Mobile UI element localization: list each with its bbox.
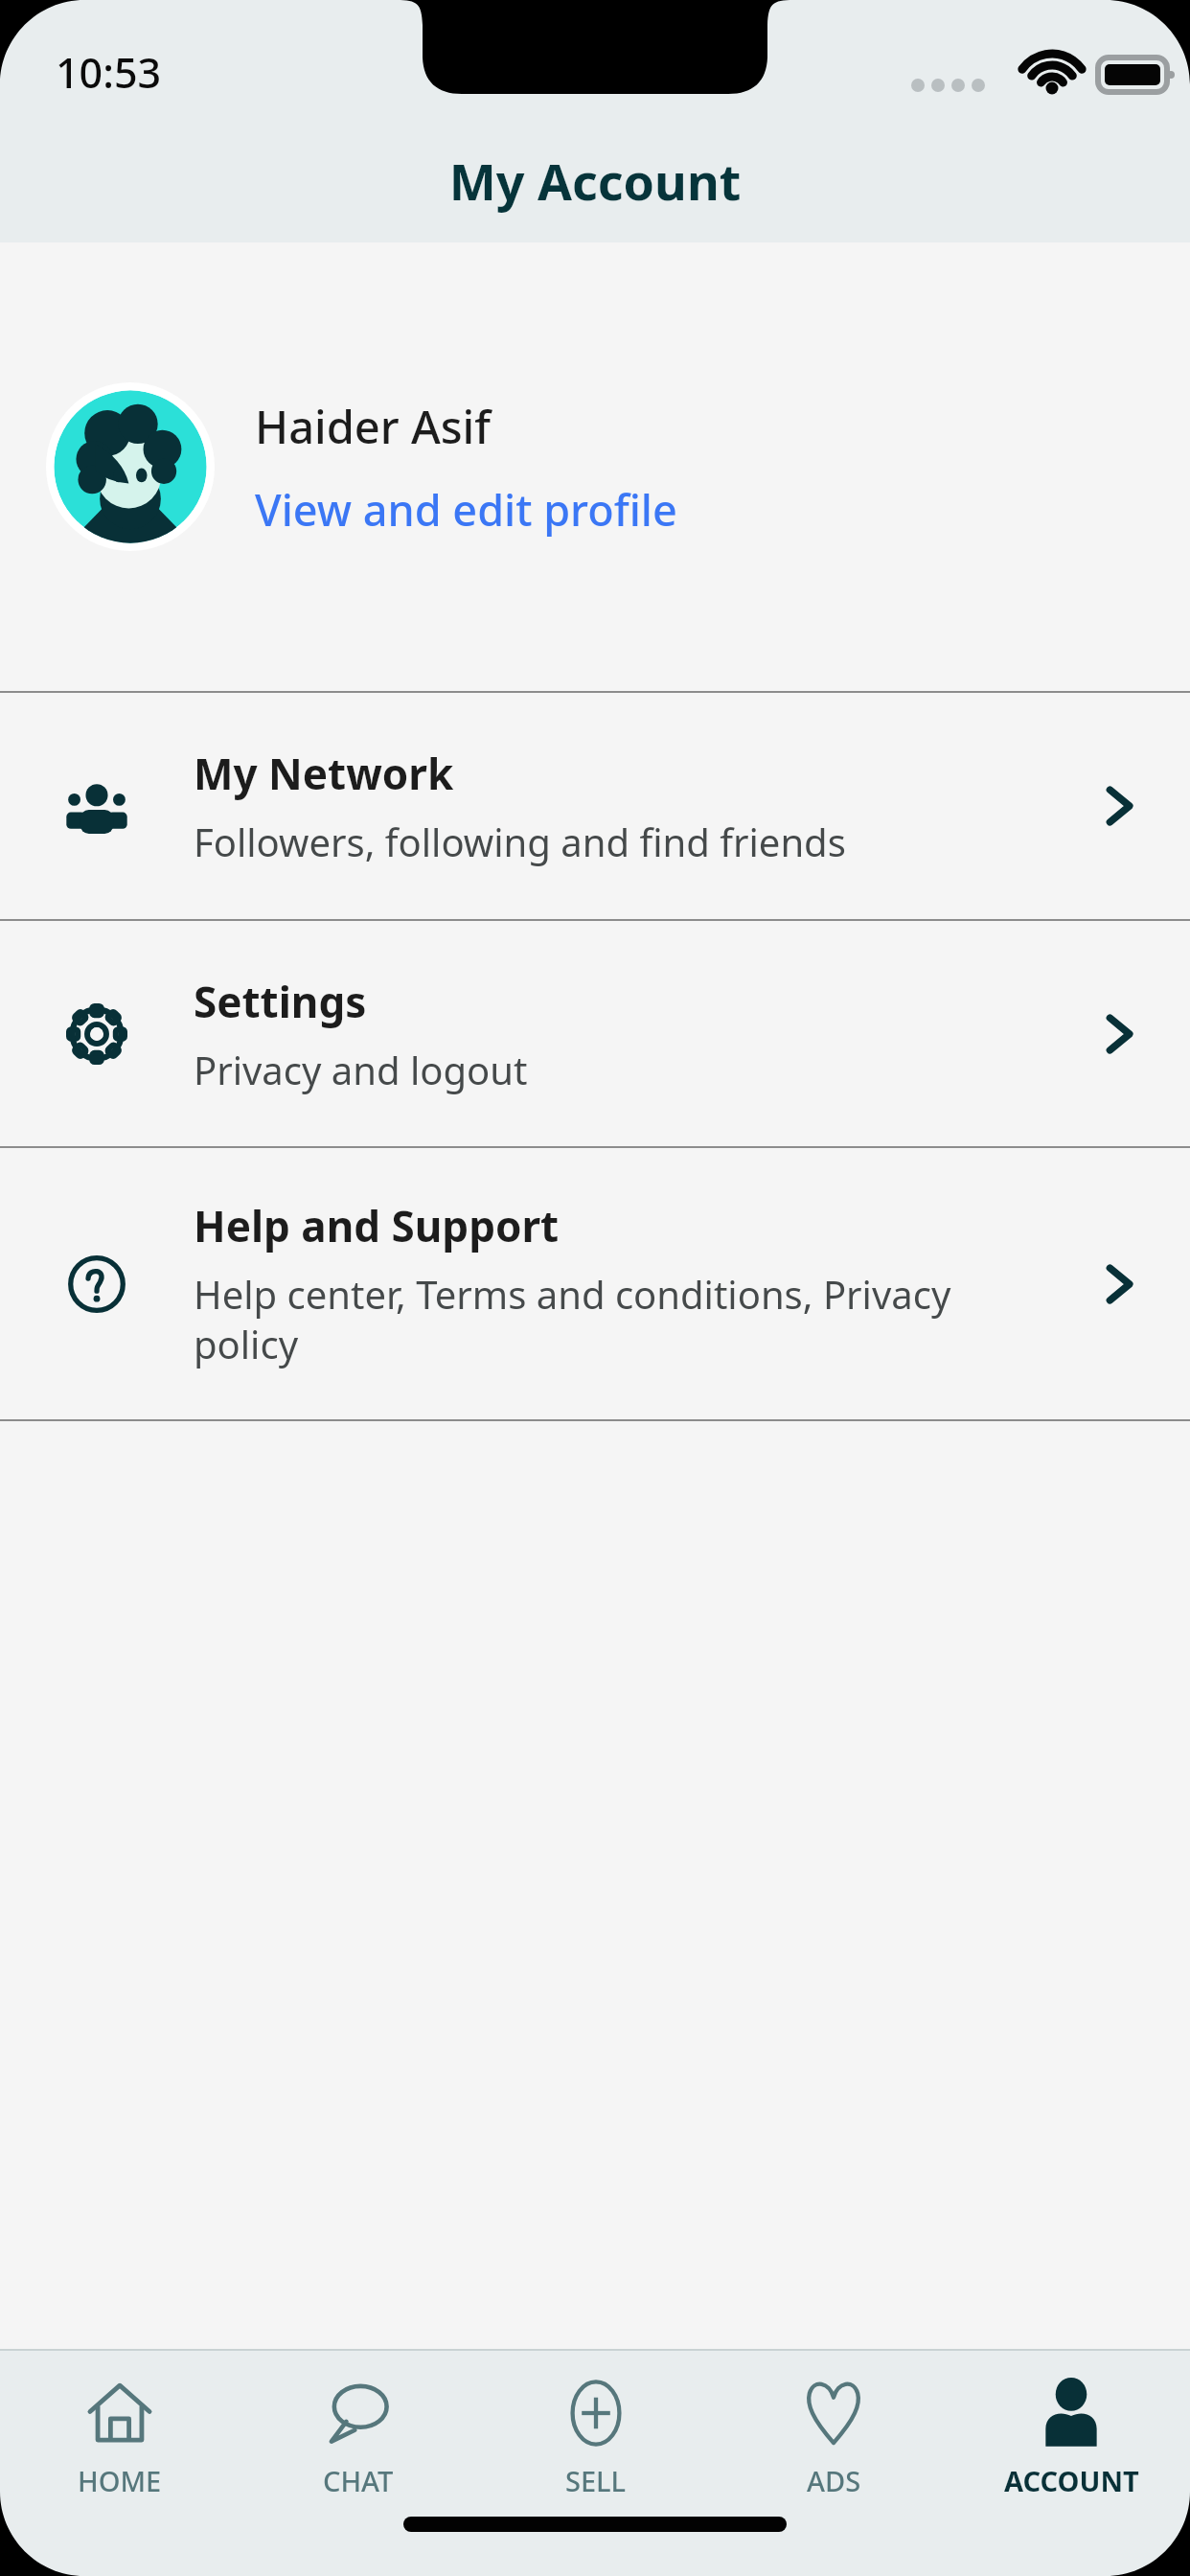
staticText: CHAT <box>323 2462 394 2499</box>
staticText: ADS <box>807 2462 861 2499</box>
button[interactable]: SELL <box>477 2372 715 2505</box>
staticText: ACCOUNT <box>1004 2462 1139 2499</box>
button[interactable]: View and edit profile <box>255 480 677 539</box>
staticText: Help center, Terms and conditions, Priva… <box>194 1268 1025 1370</box>
button[interactable]: HOME <box>0 2372 239 2505</box>
other: Open Help and Support <box>1048 1148 1190 1419</box>
button[interactable]: Settings <box>0 921 1190 1146</box>
staticText: Settings <box>194 973 367 1030</box>
staticText: Help and Support <box>194 1197 560 1254</box>
button[interactable]: ADS <box>715 2372 952 2505</box>
button[interactable]: Help and Support <box>0 1148 1190 1419</box>
staticText: My Account <box>0 147 1190 215</box>
staticText: My Network <box>194 745 454 802</box>
staticText: HOME <box>78 2462 162 2499</box>
staticText: 10:53 <box>56 44 162 101</box>
staticText: Privacy and logout <box>194 1044 528 1095</box>
staticText: Haider Asif <box>255 396 492 457</box>
button[interactable]: Haider Asif <box>0 242 1190 691</box>
other: Open My Network <box>1048 693 1190 919</box>
button[interactable]: CHAT <box>239 2372 477 2505</box>
staticText: Followers, following and find friends <box>194 816 846 867</box>
staticText: SELL <box>565 2462 627 2499</box>
other: Open Settings <box>1048 921 1190 1146</box>
button[interactable]: ACCOUNT <box>952 2372 1190 2505</box>
button[interactable]: My Network <box>0 693 1190 919</box>
